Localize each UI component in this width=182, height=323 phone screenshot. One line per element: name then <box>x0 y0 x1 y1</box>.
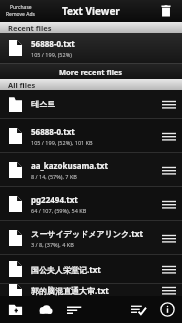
button[interactable]: Reorder <box>156 90 182 118</box>
button[interactable]: 郭的脑混直通大审.txt <box>0 284 182 296</box>
staticText: 56888-0.txt <box>31 38 75 49</box>
staticText: All files <box>8 80 36 90</box>
button[interactable]: Reorder <box>156 153 182 186</box>
button[interactable]: Reorder <box>156 284 182 296</box>
button[interactable]: 테스트 <box>0 90 182 118</box>
button[interactable]: Purchase <box>6 4 35 18</box>
button[interactable]: pg22494.txt <box>0 187 182 220</box>
staticText: Text Viewer <box>62 4 120 18</box>
staticText: Remove Ads <box>6 11 35 18</box>
staticText: More recent files <box>59 67 123 77</box>
staticText: 56888-0.txt <box>31 126 75 137</box>
button[interactable]: Cloud <box>30 296 60 323</box>
staticText: 国公夫人栄堂记.txt <box>31 264 101 275</box>
button[interactable]: Select <box>124 296 153 323</box>
staticText: 105 / 199, (52%) <box>31 51 72 58</box>
button[interactable]: aa_kazokusama.txt <box>0 153 182 186</box>
staticText: Purchase <box>10 4 32 11</box>
button[interactable]: Reorder <box>156 187 182 220</box>
button[interactable]: Reorder <box>156 119 182 152</box>
staticText: 테스트 <box>31 99 55 109</box>
staticText: 105 / 199, (52%), 101 KB <box>31 139 93 146</box>
staticText: Recent files <box>8 23 52 33</box>
button[interactable]: Reorder <box>156 255 182 283</box>
button[interactable]: Reorder <box>156 221 182 254</box>
button[interactable]: スーサイデッドメアリンク.txt <box>0 221 182 254</box>
button[interactable]: 56888-0.txt <box>0 119 182 152</box>
staticText: 郭的脑混直通大审.txt <box>31 285 109 296</box>
staticText: 64 / 107, (59%), 54 KB <box>31 207 87 214</box>
button[interactable]: More recent files <box>0 64 182 79</box>
button[interactable]: Sort <box>60 296 89 323</box>
button[interactable]: New folder <box>0 296 30 323</box>
staticText: aa_kazokusama.txt <box>31 160 108 171</box>
staticText: スーサイデッドメアリンク.txt <box>31 228 143 239</box>
staticText: pg22494.txt <box>31 194 78 205</box>
button[interactable]: Info <box>153 296 182 323</box>
button[interactable]: Delete <box>158 3 174 19</box>
button[interactable]: 56888-0.txt <box>0 33 182 63</box>
button[interactable]: 国公夫人栄堂记.txt <box>0 255 182 283</box>
staticText: 3 / 8, (37%), 4 KB <box>31 241 74 248</box>
staticText: 8 / 14, (57%), 7 KB <box>31 173 77 180</box>
